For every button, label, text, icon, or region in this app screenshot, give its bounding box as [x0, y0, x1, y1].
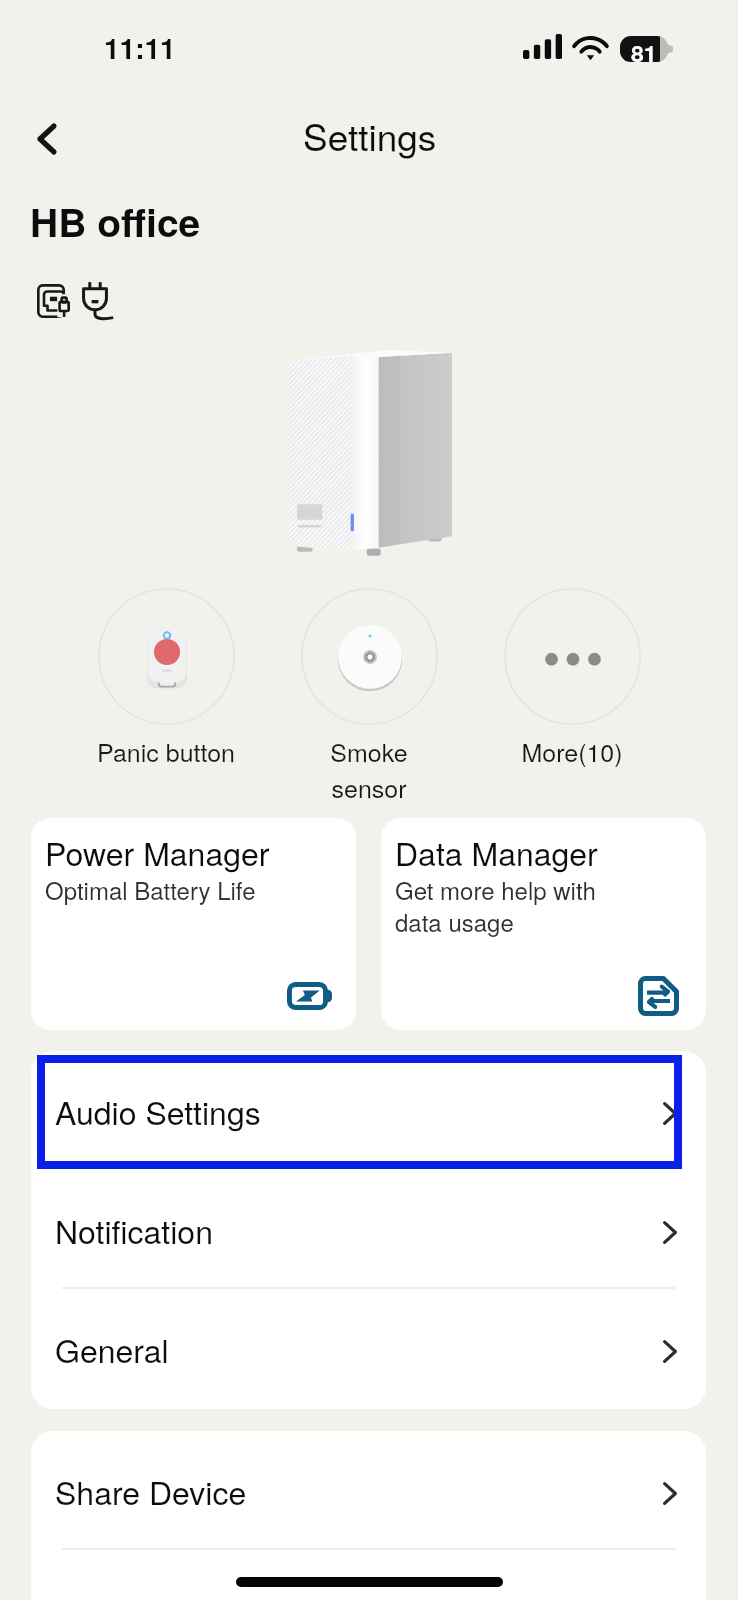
- button[interactable]: Power Manager: [31, 818, 356, 1030]
- staticText: Notification: [55, 1207, 213, 1253]
- staticText: General: [55, 1326, 169, 1372]
- staticText: More(10): [521, 733, 623, 769]
- staticText: Smoke sensor: [330, 733, 408, 805]
- staticText: Power Manager: [45, 829, 270, 875]
- button[interactable]: Audio Settings: [31, 1051, 706, 1170]
- staticText: Share Device: [55, 1468, 247, 1514]
- button[interactable]: Share Device: [31, 1431, 706, 1550]
- staticText: Data Manager: [395, 829, 598, 875]
- staticText: Panic button: [97, 733, 235, 769]
- staticText: Audio Settings: [55, 1088, 261, 1134]
- button[interactable]: Device Info: [31, 1550, 706, 1600]
- staticText: Get more help with data usage: [395, 872, 596, 939]
- staticText: Optimal Battery Life: [45, 872, 256, 906]
- staticText: 81: [631, 36, 657, 69]
- button[interactable]: More(10): [472, 588, 672, 798]
- button[interactable]: Data Manager: [381, 818, 706, 1030]
- button[interactable]: Back: [13, 105, 81, 173]
- button[interactable]: Smoke sensor: [269, 588, 469, 798]
- staticText: 11:11: [104, 27, 176, 67]
- button[interactable]: Notification: [31, 1170, 706, 1289]
- staticText: Settings: [303, 109, 437, 162]
- button[interactable]: Panic button: [66, 588, 266, 798]
- button[interactable]: General: [31, 1289, 706, 1408]
- staticText: HB office: [30, 193, 201, 249]
